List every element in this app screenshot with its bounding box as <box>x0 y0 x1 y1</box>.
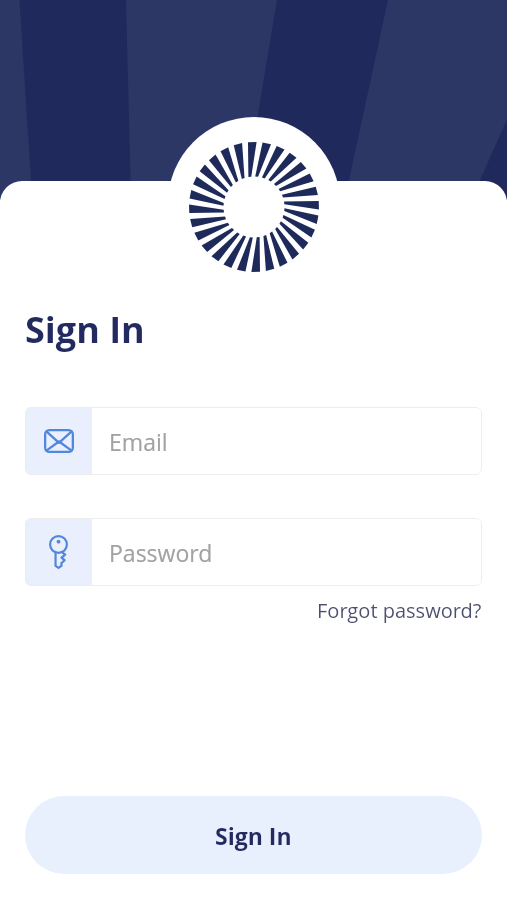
staticText: Sign In <box>25 305 145 354</box>
button[interactable]: Email <box>25 407 482 475</box>
staticText: Password <box>109 537 213 568</box>
other: Email <box>44 429 74 453</box>
staticText: Email <box>109 426 168 457</box>
button[interactable]: Sign In <box>25 796 482 874</box>
button[interactable]: Forgot password? <box>317 597 482 624</box>
other: Password <box>49 535 68 569</box>
staticText: Sign In <box>215 820 292 851</box>
button[interactable]: Password <box>25 518 482 586</box>
staticText: Forgot password? <box>317 597 482 624</box>
